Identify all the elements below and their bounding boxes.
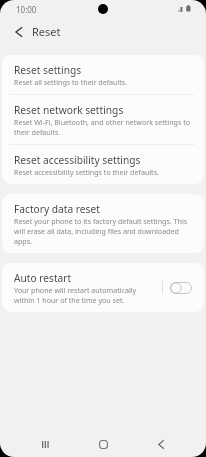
button[interactable]: Auto restart [2,263,162,312]
staticText: Reset Wi-Fi, Bluetooth, and other networ… [14,117,192,137]
staticText: Auto restart [14,271,72,285]
button[interactable]: Reset network settings [2,95,204,144]
staticText: Reset all settings to their defaults. [14,77,128,87]
staticText: Reset settings [14,63,82,77]
staticText: Reset accessibility settings to their de… [14,167,159,177]
button[interactable]: Navigate up [5,18,32,45]
button[interactable]: Factory data reset [2,194,204,253]
button[interactable]: Back [147,430,175,457]
staticText: Reset [32,24,61,39]
staticText: Your phone will restart automatically wi… [14,285,144,305]
button[interactable]: Auto restart [170,282,192,294]
button[interactable]: Reset settings [2,55,204,94]
staticText: 10:00 [16,4,37,15]
staticText: Reset your phone to its factory default … [14,216,192,246]
button[interactable]: Home [89,430,117,457]
staticText: Factory data reset [14,202,100,216]
button[interactable]: Reset accessibility settings [2,145,204,184]
button[interactable]: Recent apps [31,430,59,457]
staticText: Reset accessibility settings [14,153,141,167]
staticText: Reset network settings [14,103,124,117]
